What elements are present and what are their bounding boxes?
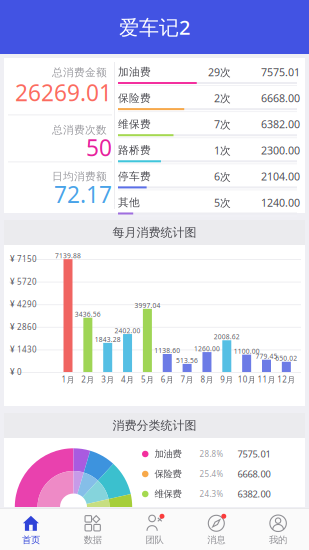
- staticText: 6月: [161, 374, 174, 385]
- staticText: 我的: [269, 534, 287, 546]
- staticText: ¥ 4290: [10, 299, 37, 309]
- staticText: 总消费次数: [52, 123, 107, 136]
- staticText: ¥ 0: [10, 367, 22, 377]
- staticText: 消息: [207, 534, 225, 546]
- staticText: 首页: [22, 534, 40, 546]
- button[interactable]: 消息: [185, 509, 247, 550]
- staticText: 650.02: [275, 354, 297, 363]
- staticText: 每月消费统计图: [112, 225, 196, 240]
- staticText: 7次: [214, 117, 231, 131]
- staticText: 团队: [145, 534, 163, 546]
- staticText: 1月: [61, 374, 74, 385]
- staticText: 24.3%: [199, 489, 223, 499]
- staticText: 6668.00: [261, 91, 300, 105]
- staticText: 72.17: [54, 179, 112, 209]
- button[interactable]: 首页: [0, 509, 62, 550]
- staticText: 保险费: [118, 91, 151, 105]
- staticText: 消费分类统计图: [112, 418, 196, 433]
- button[interactable]: 团队: [124, 509, 185, 550]
- staticText: 6382.00: [261, 117, 300, 131]
- staticText: 1138.60: [154, 346, 180, 355]
- staticText: 6382.00: [237, 488, 270, 500]
- staticText: 513.56: [176, 356, 198, 365]
- staticText: 2次: [214, 91, 231, 105]
- staticText: 3436.56: [75, 310, 101, 319]
- staticText: 2008.62: [214, 332, 240, 341]
- staticText: 7月: [181, 374, 194, 385]
- staticText: 维保费: [118, 118, 151, 131]
- staticText: 数据: [84, 534, 102, 546]
- staticText: 1240.00: [261, 195, 300, 210]
- staticText: 2月: [81, 374, 94, 385]
- staticText: 3月: [101, 374, 114, 385]
- staticText: 1次: [214, 143, 231, 157]
- staticText: 加油费: [154, 448, 181, 460]
- staticText: 路桥费: [118, 144, 151, 157]
- staticText: 11月: [257, 374, 275, 385]
- staticText: 停车费: [118, 170, 151, 183]
- button[interactable]: 数据: [62, 509, 124, 550]
- staticText: 2300.00: [261, 143, 300, 157]
- staticText: 加油费: [118, 65, 151, 78]
- staticText: 1100.00: [234, 347, 260, 356]
- staticText: 5月: [141, 374, 154, 385]
- staticText: 7575.01: [237, 448, 270, 460]
- staticText: ¥ 1430: [10, 344, 37, 355]
- staticText: 6次: [214, 169, 231, 183]
- staticText: 10月: [238, 374, 256, 385]
- staticText: 26269.01: [15, 77, 112, 107]
- staticText: 1843.28: [95, 335, 121, 344]
- staticText: 8月: [200, 374, 213, 385]
- staticText: 7139.88: [55, 251, 81, 260]
- button[interactable]: 我的: [247, 509, 309, 550]
- staticText: 6668.00: [237, 468, 270, 480]
- staticText: 7575.01: [261, 65, 300, 79]
- staticText: 2402.00: [115, 326, 141, 335]
- staticText: 4月: [121, 374, 134, 385]
- staticText: 维保费: [154, 488, 181, 500]
- staticText: 爱车记2: [119, 14, 190, 40]
- staticText: 其他: [118, 196, 140, 209]
- staticText: 12月: [277, 374, 295, 385]
- staticText: 日均消费额: [52, 170, 107, 183]
- staticText: 779.45: [255, 352, 277, 361]
- staticText: 29次: [208, 65, 231, 79]
- staticText: ¥ 2860: [10, 321, 37, 332]
- staticText: 3997.04: [134, 301, 160, 310]
- staticText: 保险费: [154, 468, 181, 480]
- staticText: ¥ 7150: [10, 254, 37, 264]
- staticText: 9月: [220, 374, 233, 385]
- staticText: 50: [86, 132, 112, 162]
- staticText: 2104.00: [261, 169, 300, 183]
- staticText: 1260.00: [194, 344, 220, 353]
- staticText: 5次: [214, 195, 231, 210]
- staticText: ¥ 5720: [10, 276, 37, 287]
- staticText: 28.8%: [199, 449, 223, 459]
- staticText: 25.4%: [199, 469, 223, 479]
- staticText: 总消费金额: [52, 66, 107, 79]
